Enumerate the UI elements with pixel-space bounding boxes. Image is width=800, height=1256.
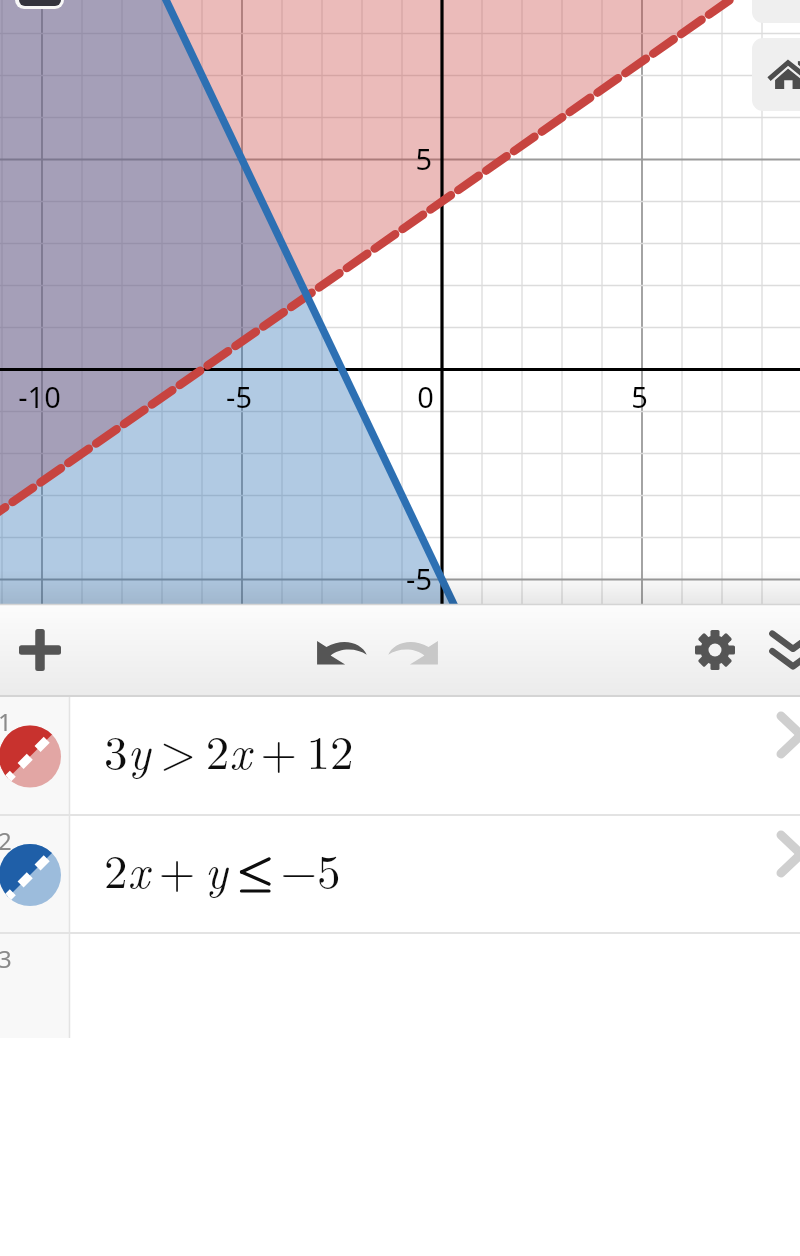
staticText: -10 bbox=[18, 377, 61, 416]
button[interactable]: 1 bbox=[0, 697, 800, 816]
button[interactable]: Settings bbox=[679, 612, 751, 688]
staticText: 5 bbox=[631, 377, 648, 416]
button[interactable]: Collapse expression list bbox=[757, 612, 800, 688]
staticText: −5 bbox=[271, 835, 341, 902]
staticText: 2x + y bbox=[104, 835, 237, 902]
button[interactable]: Redo bbox=[378, 612, 450, 688]
button[interactable]: Add expression bbox=[4, 612, 76, 688]
button[interactable]: Undo bbox=[305, 612, 377, 688]
staticText: 2 bbox=[0, 824, 12, 857]
staticText: 0 bbox=[417, 377, 434, 416]
staticText: -5 bbox=[226, 377, 252, 416]
staticText: -5 bbox=[406, 559, 432, 598]
button[interactable]: 3 bbox=[0, 934, 800, 1038]
staticText: 3 bbox=[0, 942, 12, 975]
staticText: 3y > 2x + 12 bbox=[104, 716, 354, 783]
button[interactable]: Zoom in bbox=[15, 0, 64, 9]
staticText: 5 bbox=[415, 139, 432, 178]
button[interactable]: 2 bbox=[0, 816, 800, 934]
staticText: 1 bbox=[0, 705, 12, 738]
button[interactable]: Home bbox=[752, 38, 800, 111]
